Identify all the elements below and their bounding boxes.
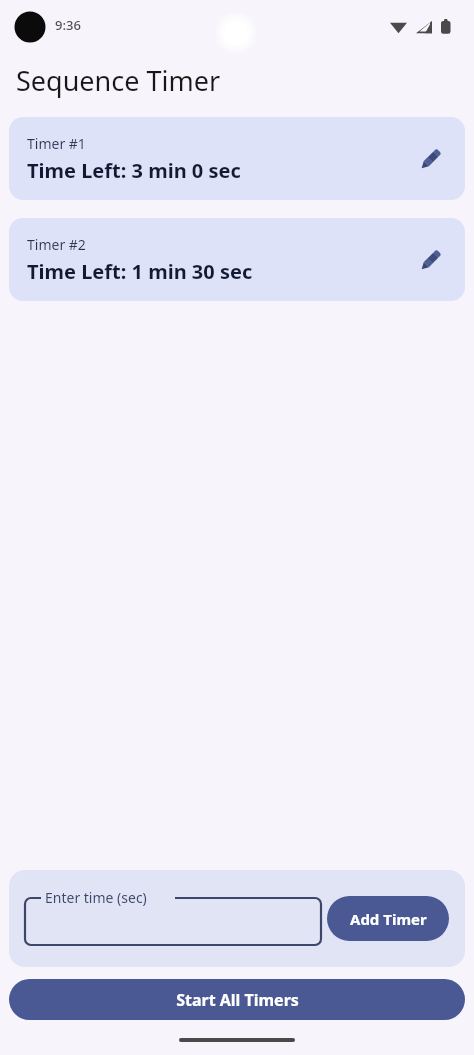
staticText: Sequence Timer <box>16 62 221 99</box>
staticText: Timer #1 <box>27 134 86 153</box>
staticText: Start All Timers <box>176 989 299 1011</box>
staticText: Time Left: 3 min 0 sec <box>27 157 241 184</box>
staticText: Enter time (sec) <box>45 888 147 907</box>
button[interactable]: Timer #1 <box>9 117 465 200</box>
staticText: 9:36 <box>55 16 81 34</box>
button[interactable]: Enter time (sec) <box>25 887 321 951</box>
staticText: Time Left: 1 min 30 sec <box>27 258 253 285</box>
button[interactable]: Start All Timers <box>9 979 465 1020</box>
button[interactable]: Add Timer <box>327 896 449 941</box>
staticText: Timer #2 <box>27 235 86 254</box>
button[interactable]: Edit timer <box>409 137 453 181</box>
staticText: Add Timer <box>350 909 427 929</box>
button[interactable]: Edit timer <box>409 238 453 282</box>
button[interactable]: Timer #2 <box>9 218 465 301</box>
